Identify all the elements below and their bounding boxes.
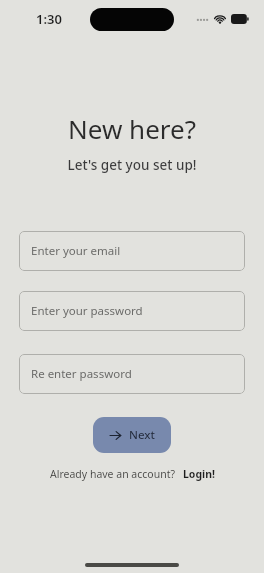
staticText: Next [129,427,155,443]
button[interactable]: Enter your password [19,291,245,331]
staticText: Already have an account? [50,467,176,481]
staticText: Login! [183,467,215,481]
staticText: Re enter password [31,366,132,382]
staticText: 1:30 [36,10,62,28]
staticText: Let's get you set up! [0,156,264,174]
button[interactable]: Enter your email [19,231,245,271]
staticText: Enter your password [31,303,143,319]
staticText: New here? [0,111,264,146]
button[interactable]: Next [93,417,171,453]
staticText: Enter your email [31,243,121,259]
button[interactable]: Re enter password [19,354,245,394]
button[interactable]: Login! [183,467,215,481]
